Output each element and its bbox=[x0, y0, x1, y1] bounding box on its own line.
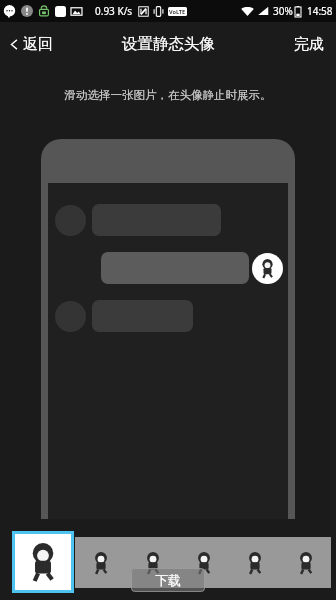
staticText: 下载 bbox=[155, 572, 181, 588]
button[interactable]: 返回 bbox=[0, 25, 62, 64]
staticText: VoLTE bbox=[169, 8, 186, 15]
staticText: 14:58 bbox=[307, 4, 333, 18]
staticText: 0.93 K/s bbox=[95, 4, 133, 18]
staticText: 30% bbox=[273, 4, 293, 18]
button[interactable]: 下载 bbox=[131, 568, 205, 592]
staticText: 设置静态头像 bbox=[122, 34, 215, 54]
button[interactable]: Frame bbox=[178, 537, 229, 588]
button[interactable]: Frame bbox=[75, 537, 127, 588]
button[interactable]: 完成 bbox=[282, 25, 336, 64]
button[interactable]: Selected frame bbox=[15, 534, 71, 590]
staticText: 完成 bbox=[294, 35, 324, 54]
button[interactable]: Frame bbox=[229, 537, 280, 588]
staticText: 滑动选择一张图片，在头像静止时展示。 bbox=[0, 88, 336, 102]
button[interactable]: Frame bbox=[127, 537, 178, 588]
staticText: 返回 bbox=[23, 35, 53, 54]
button[interactable]: Frame bbox=[280, 537, 331, 588]
